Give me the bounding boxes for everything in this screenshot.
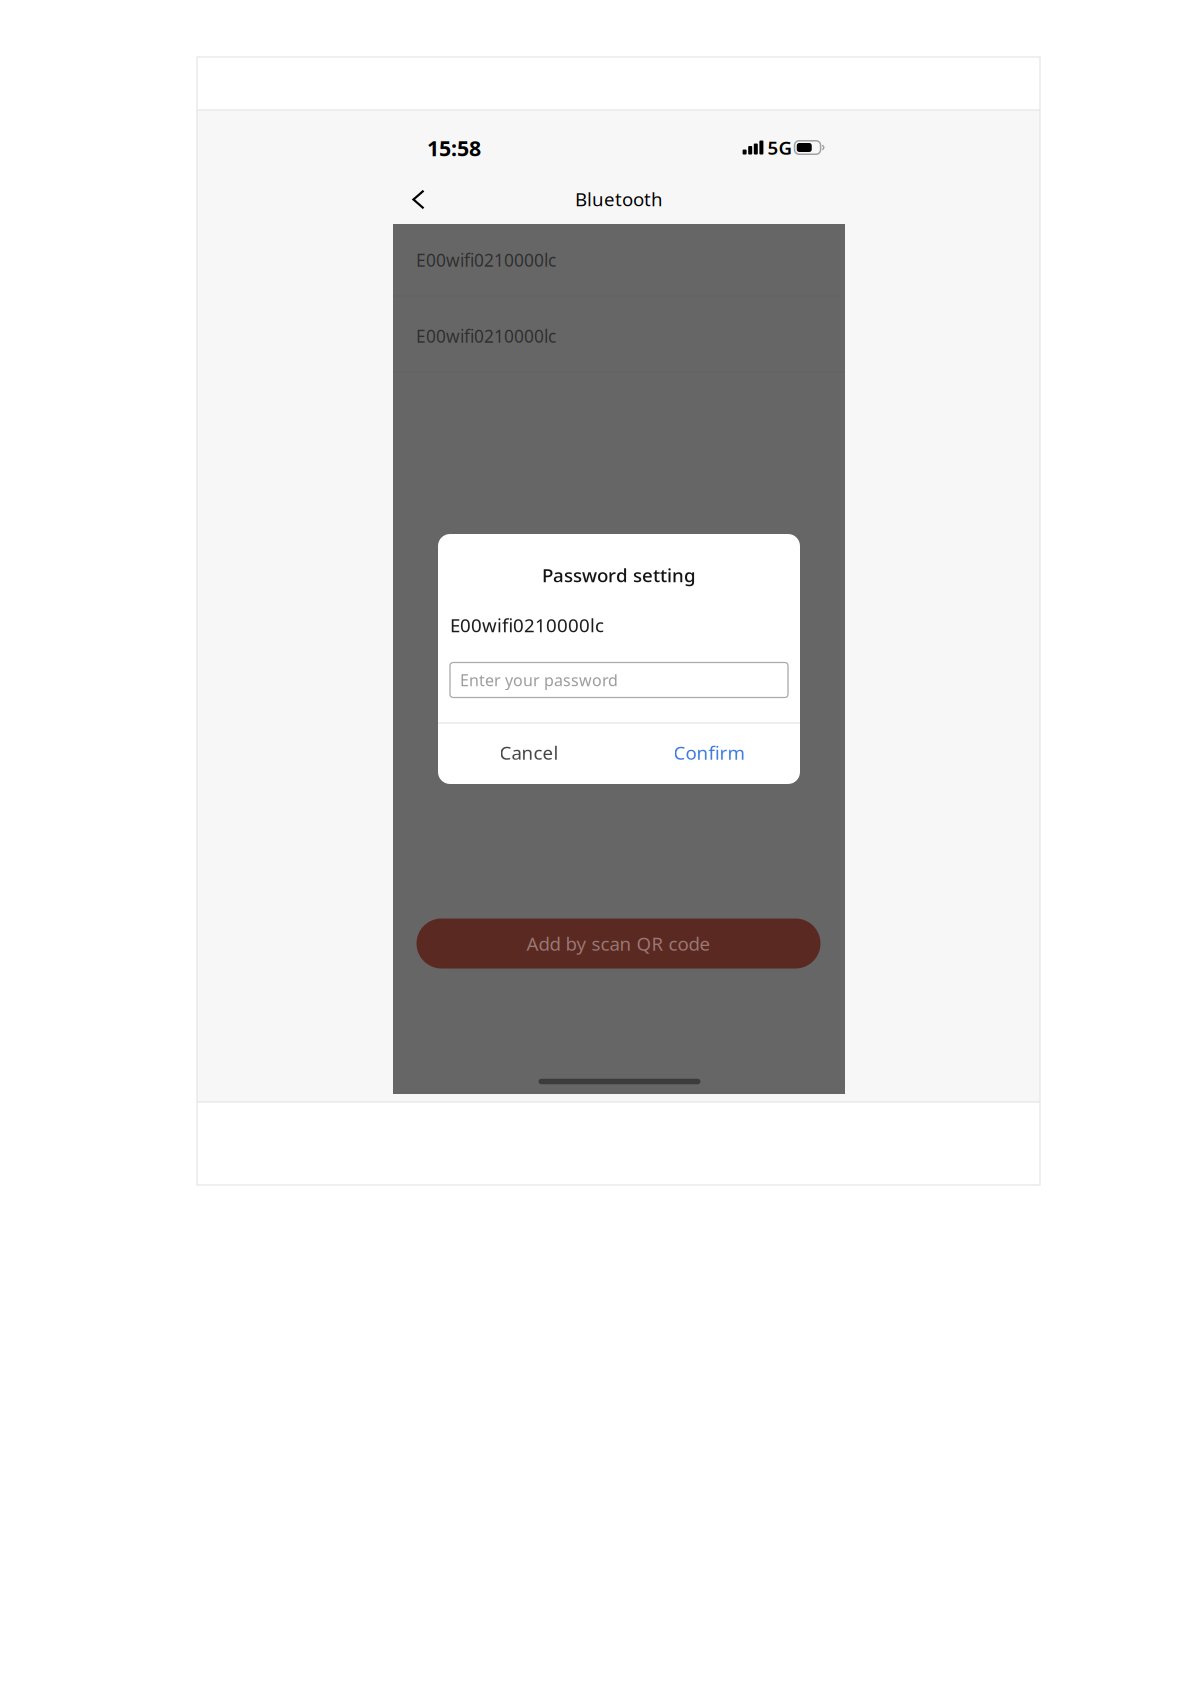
staticText: 15:58 (427, 134, 481, 162)
button[interactable]: Cancel (438, 722, 619, 783)
staticText: Cancel (499, 740, 558, 765)
button[interactable]: Add by scan QR code (416, 918, 820, 968)
button[interactable]: Back (395, 176, 442, 222)
staticText: Bluetooth (575, 187, 663, 211)
staticText: Confirm (673, 740, 744, 765)
button[interactable]: E00wifi0210000lc (393, 298, 845, 374)
staticText: E00wifi0210000lc (416, 248, 556, 271)
staticText: 5G (767, 135, 792, 160)
staticText: E00wifi0210000lc (416, 324, 556, 347)
button[interactable]: Confirm (618, 722, 799, 783)
staticText: Enter your password (460, 669, 618, 691)
staticText: E00wifi0210000lc (450, 613, 604, 637)
button[interactable]: E00wifi0210000lc (393, 224, 845, 296)
staticText: Password setting (542, 563, 696, 587)
staticText: Add by scan QR code (526, 931, 710, 956)
